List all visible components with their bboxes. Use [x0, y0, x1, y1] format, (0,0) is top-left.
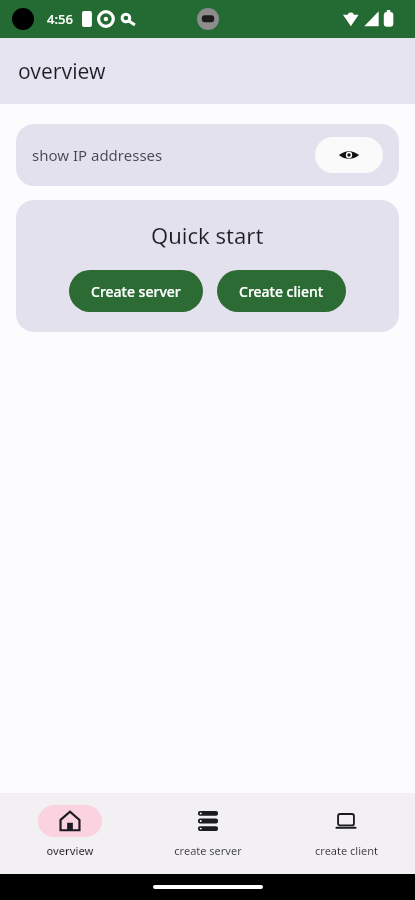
button[interactable]: create server [139, 793, 277, 874]
button[interactable]: show IP addresses [16, 124, 399, 186]
button[interactable]: create client [277, 793, 415, 874]
staticText: 4:56 [47, 10, 73, 28]
staticText: overview [18, 57, 106, 86]
button[interactable]: Create client [217, 270, 346, 312]
staticText: Quick start [151, 220, 264, 250]
staticText: overview [46, 843, 94, 858]
staticText: Create client [239, 282, 324, 301]
staticText: show IP addresses [32, 145, 163, 165]
staticText: create client [315, 843, 378, 858]
staticText: create server [174, 843, 242, 858]
button[interactable]: overview [0, 793, 139, 874]
staticText: Create server [91, 282, 181, 301]
button[interactable]: Toggle show IP addresses [315, 137, 383, 173]
button[interactable]: Create server [69, 270, 203, 312]
